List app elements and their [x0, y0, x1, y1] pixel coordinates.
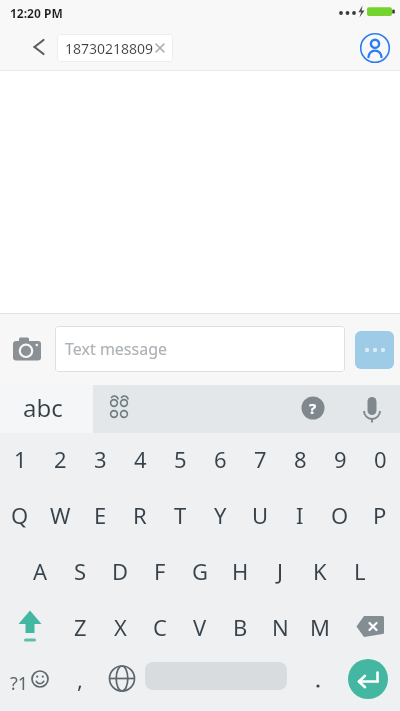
button[interactable]: 8	[280, 433, 320, 485]
staticText: J	[277, 556, 284, 586]
button[interactable]: Z	[60, 599, 100, 655]
staticText: L	[354, 556, 366, 586]
button[interactable]: E	[80, 487, 120, 543]
button[interactable]: 2	[40, 433, 80, 485]
staticText: 0	[374, 444, 387, 474]
staticText: A	[33, 556, 48, 586]
staticText: E	[94, 500, 107, 530]
staticText: Y	[214, 500, 227, 530]
button[interactable]: 7	[240, 433, 280, 485]
staticText: D	[112, 556, 129, 586]
staticText: 7	[254, 444, 267, 474]
button[interactable]: G	[180, 543, 220, 599]
staticText: T	[174, 500, 187, 530]
button[interactable]: T	[160, 487, 200, 543]
staticText: U	[252, 500, 269, 530]
button[interactable]: Q	[0, 487, 40, 543]
button[interactable]: 5	[160, 433, 200, 485]
staticText: 18730218809	[65, 39, 154, 58]
button[interactable]: Text message	[55, 326, 345, 372]
button[interactable]	[100, 389, 140, 429]
button[interactable]: W	[40, 487, 80, 543]
button[interactable]: P	[360, 487, 400, 543]
button[interactable]: 18730218809	[57, 34, 173, 62]
staticText: 4	[134, 444, 147, 474]
button[interactable]: N	[260, 599, 300, 655]
staticText: 12:20 PM	[10, 5, 63, 21]
staticText: Text message	[65, 338, 168, 360]
staticText: ,	[77, 664, 83, 694]
button[interactable]: M	[300, 599, 340, 655]
button[interactable]: ?1	[0, 655, 60, 711]
button[interactable]: L	[340, 543, 380, 599]
button[interactable]: 6	[200, 433, 240, 485]
button[interactable]: R	[120, 487, 160, 543]
staticText: N	[272, 612, 289, 642]
staticText: C	[153, 612, 167, 642]
button[interactable]	[352, 389, 392, 429]
button[interactable]: ,	[60, 655, 100, 711]
staticText: 5	[174, 444, 187, 474]
button[interactable]: ?	[293, 389, 333, 429]
staticText: M	[310, 612, 330, 642]
staticText: R	[133, 500, 147, 530]
staticText: G	[192, 556, 209, 586]
button[interactable]	[348, 659, 388, 699]
staticText: 6	[214, 444, 227, 474]
staticText: 3	[94, 444, 107, 474]
button[interactable]: 3	[80, 433, 120, 485]
staticText: 2	[54, 444, 67, 474]
staticText: ?1	[10, 671, 29, 696]
button[interactable]: V	[180, 599, 220, 655]
button[interactable]	[298, 655, 338, 711]
button[interactable]: 4	[120, 433, 160, 485]
staticText: V	[193, 612, 207, 642]
button[interactable]: F	[140, 543, 180, 599]
button[interactable]: X	[100, 599, 140, 655]
button[interactable]	[11, 334, 43, 364]
button[interactable]	[355, 331, 394, 369]
button[interactable]: Y	[200, 487, 240, 543]
staticText: Q	[11, 500, 29, 530]
button[interactable]: C	[140, 599, 180, 655]
button[interactable]	[100, 655, 144, 711]
button[interactable]: I	[280, 487, 320, 543]
button[interactable]: abc	[0, 385, 93, 433]
button[interactable]: H	[220, 543, 260, 599]
staticText: ?	[309, 398, 317, 418]
button[interactable]	[340, 599, 400, 655]
staticText: 9	[334, 444, 347, 474]
button[interactable]: 9	[320, 433, 360, 485]
staticText: K	[313, 556, 327, 586]
staticText: abc	[23, 391, 63, 424]
button[interactable]	[23, 31, 55, 63]
staticText: O	[331, 500, 349, 530]
button[interactable]	[359, 32, 391, 64]
staticText: B	[233, 612, 248, 642]
staticText: W	[50, 500, 71, 530]
button[interactable]: 0	[360, 433, 400, 485]
button[interactable]: J	[260, 543, 300, 599]
staticText: H	[232, 556, 249, 586]
staticText: 8	[294, 444, 307, 474]
staticText: P	[373, 500, 387, 530]
button[interactable]: O	[320, 487, 360, 543]
button[interactable]: S	[60, 543, 100, 599]
staticText: 1	[14, 444, 27, 474]
button[interactable]: D	[100, 543, 140, 599]
staticText: F	[154, 556, 166, 586]
staticText: Z	[74, 612, 87, 642]
button[interactable]	[0, 599, 60, 655]
button[interactable]: B	[220, 599, 260, 655]
button[interactable]: 1	[0, 433, 40, 485]
button[interactable]: A	[20, 543, 60, 599]
staticText: X	[114, 612, 127, 642]
button[interactable]: U	[240, 487, 280, 543]
staticText: I	[296, 500, 304, 530]
button[interactable]: K	[300, 543, 340, 599]
staticText: S	[74, 556, 87, 586]
